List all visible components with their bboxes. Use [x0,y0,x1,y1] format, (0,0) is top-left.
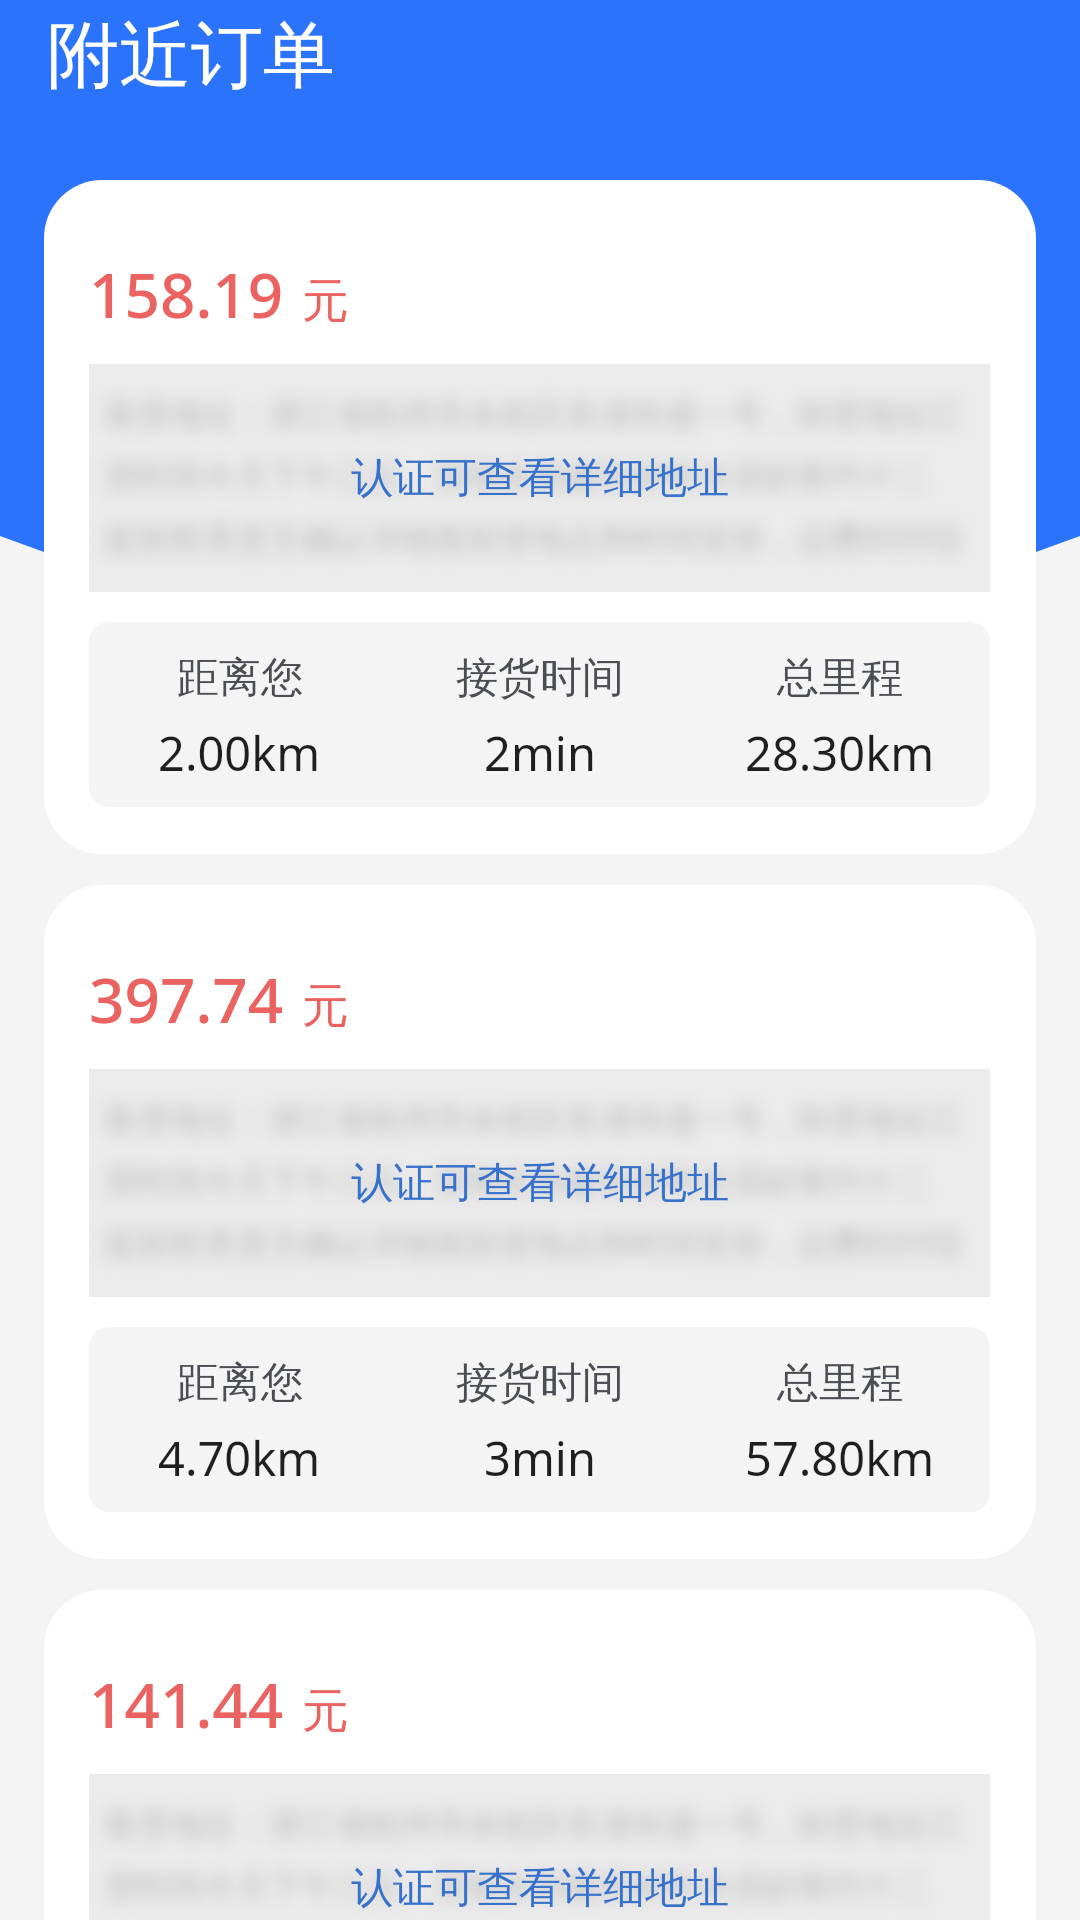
button[interactable]: 397.74 [44,885,1036,1559]
staticText: 4.70km [158,1426,321,1490]
staticText: 2.00km [158,721,321,785]
staticText: 认证可查看详细地址 [351,1862,729,1915]
staticText: 28.30km [745,721,935,785]
staticText: 提前联系货主确认详细装卸货地点和时间安排，运费到付结算方式，谢谢配合，注 [104,518,980,560]
staticText: 57.80km [745,1426,935,1490]
staticText: 装货地址：浙江省杭州市余杭区良渚街道一号，卸货地址江苏省苏州市吴中区，装 [104,1099,980,1141]
staticText: 接货时间 [456,1357,624,1410]
staticText: 总里程 [777,652,903,705]
staticText: 接货时间 [456,652,624,705]
staticText: 元 [302,977,349,1036]
staticText: 距离您 [177,652,303,705]
staticText: 元 [302,1682,349,1741]
staticText: 3min [484,1426,597,1490]
button[interactable]: 158.19 [44,180,1036,854]
button[interactable]: 141.44 [44,1590,1036,1920]
staticText: 附近订单 [47,11,335,102]
staticText: 距离您 [177,1357,303,1410]
button[interactable]: 认证可查看详细地址 [327,1848,753,1920]
button[interactable]: 认证可查看详细地址 [327,1143,753,1224]
button[interactable]: 认证可查看详细地址 [327,438,753,519]
staticText: 货时间今天下午三点，货物名称建筑材料水泥砂浆约十二吨，需九米六高栏车，请 [104,1161,980,1203]
staticText: 货时间今天下午三点，货物名称建筑材料水泥砂浆约十二吨，需九米六高栏车，请 [104,1866,980,1908]
staticText: 397.74 [89,957,284,1041]
staticText: 158.19 [89,252,284,336]
staticText: 2min [484,721,597,785]
staticText: 货时间今天下午三点，货物名称建筑材料水泥砂浆约十二吨，需九米六高栏车，请 [104,456,980,498]
staticText: 装货地址：浙江省杭州市余杭区良渚街道一号，卸货地址江苏省苏州市吴中区，装 [104,394,980,436]
staticText: 总里程 [777,1357,903,1410]
staticText: 提前联系货主确认详细装卸货地点和时间安排，运费到付结算方式，谢谢配合，注 [104,1223,980,1265]
staticText: 141.44 [89,1662,284,1746]
staticText: 认证可查看详细地址 [351,1157,729,1210]
staticText: 装货地址：浙江省杭州市余杭区良渚街道一号，卸货地址江苏省苏州市吴中区，装 [104,1804,980,1846]
staticText: 元 [302,272,349,331]
staticText: 认证可查看详细地址 [351,452,729,505]
